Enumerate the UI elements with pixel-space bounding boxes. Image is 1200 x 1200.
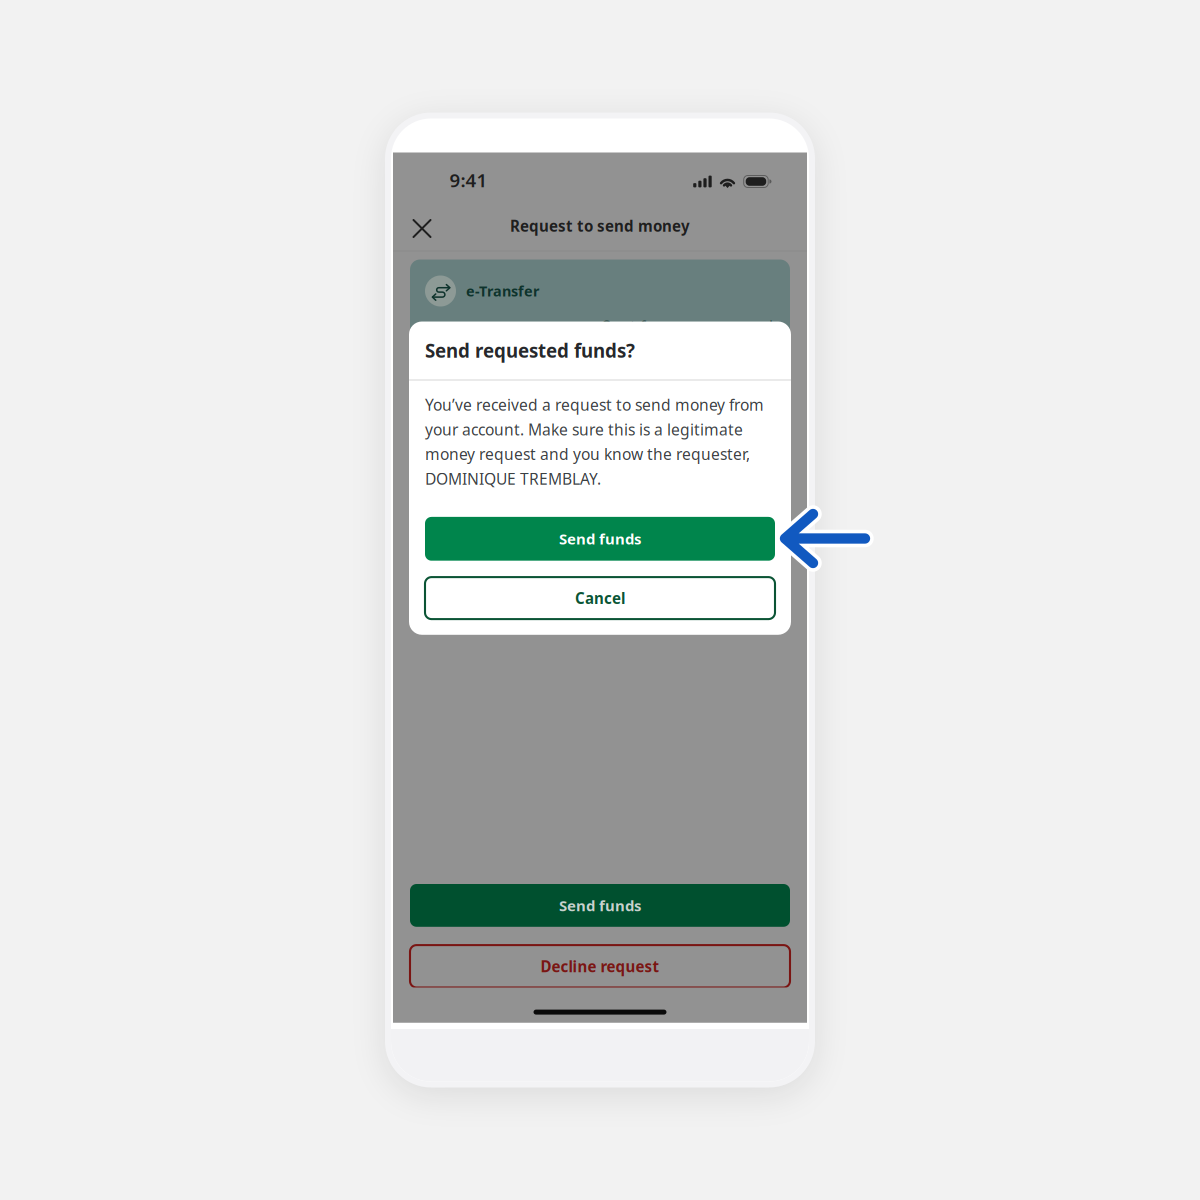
button[interactable]: Decline request (410, 945, 790, 987)
staticText: † (767, 315, 775, 337)
staticText: Send funds (559, 895, 641, 915)
staticText: Request to send money (510, 216, 690, 236)
button[interactable]: Send funds (425, 517, 775, 561)
staticText: Cancel (575, 588, 625, 608)
staticText: DOMINIQUE TREMBLAY. (425, 468, 601, 489)
staticText: e-Transfer (466, 281, 539, 301)
staticText: Send funds (559, 529, 641, 549)
staticText: Sent from (602, 315, 677, 337)
button[interactable]: Close (400, 206, 444, 250)
button[interactable]: Cancel (425, 577, 775, 619)
staticText: You’ve received a request to send money … (425, 394, 764, 415)
staticText: your account. Make sure this is a legiti… (425, 419, 743, 440)
staticText: money request and you know the requester… (425, 443, 750, 465)
button[interactable]: Send funds (410, 884, 790, 927)
staticText: Send requested funds? (425, 338, 635, 363)
staticText: 9:41 (449, 167, 487, 193)
staticText: Decline request (540, 956, 659, 976)
